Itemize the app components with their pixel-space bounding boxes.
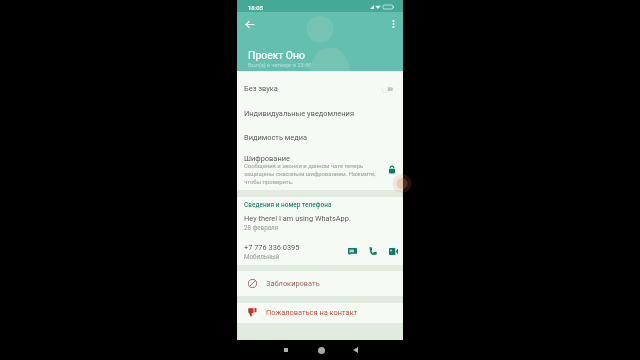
staticText: Индивидуальные уведомления bbox=[244, 109, 354, 118]
staticText: Был(а) в четверг в 23:48 bbox=[248, 62, 312, 68]
button[interactable]: Видимость медиа bbox=[237, 125, 403, 149]
button[interactable]: Recents bbox=[279, 343, 293, 357]
button[interactable]: Пожаловаться на контакт bbox=[237, 302, 403, 323]
button[interactable]: More options bbox=[382, 13, 403, 35]
staticText: Заблокировать bbox=[266, 279, 320, 288]
staticText: +7 776 336 0395 bbox=[244, 243, 300, 252]
button[interactable]: Заблокировать bbox=[237, 271, 403, 296]
button[interactable]: Back bbox=[238, 13, 260, 35]
button[interactable]: Без звука bbox=[237, 76, 403, 100]
staticText: Пожаловаться на контакт bbox=[266, 308, 358, 317]
button[interactable]: Encryption bbox=[386, 163, 398, 175]
staticText: 28 февраля bbox=[244, 224, 279, 231]
staticText: 18:05 bbox=[248, 4, 263, 11]
button[interactable]: Home bbox=[314, 343, 328, 357]
button[interactable]: Back bbox=[348, 343, 362, 357]
staticText: Проект Оно bbox=[248, 49, 305, 61]
staticText: Сообщения и звонки в данном чате теперь … bbox=[244, 163, 379, 185]
staticText: Hey there! I am using WhatsApp. bbox=[244, 214, 351, 223]
button[interactable]: Call bbox=[366, 244, 380, 258]
staticText: Мобильный bbox=[244, 253, 280, 260]
staticText: Сведения и номер телефона bbox=[244, 201, 332, 209]
button[interactable]: Mute toggle bbox=[382, 83, 394, 95]
staticText: Видимость медиа bbox=[244, 133, 308, 142]
staticText: Шифрование bbox=[244, 154, 290, 163]
button[interactable]: Video call bbox=[386, 244, 400, 258]
button[interactable]: Индивидуальные уведомления bbox=[237, 101, 403, 125]
staticText: Без звука bbox=[244, 84, 278, 93]
button[interactable]: Message bbox=[345, 244, 359, 258]
